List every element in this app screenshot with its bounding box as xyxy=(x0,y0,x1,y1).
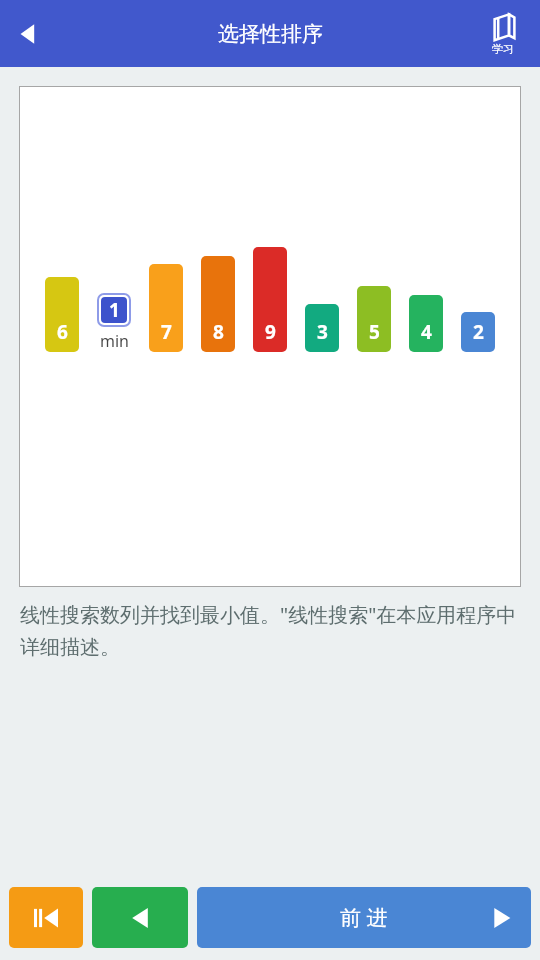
button[interactable]: 前 进 xyxy=(197,887,531,948)
staticText: 1 xyxy=(109,297,120,323)
staticText: 线性搜索数列并找到最小值。"线性搜索"在本应用程序中详细描述。 xyxy=(20,601,520,660)
staticText: 2 xyxy=(473,319,484,345)
staticText: 6 xyxy=(57,319,68,345)
staticText: 3 xyxy=(317,319,328,345)
button[interactable]: Back xyxy=(0,6,56,62)
staticText: 7 xyxy=(161,319,172,345)
staticText: 4 xyxy=(421,319,432,345)
staticText: 9 xyxy=(265,319,276,345)
button[interactable]: Restart xyxy=(9,887,83,948)
staticText: 选择性排序 xyxy=(218,21,323,47)
staticText: 前 进 xyxy=(340,903,388,932)
button[interactable]: 学习 xyxy=(474,5,532,63)
staticText: 8 xyxy=(213,319,224,345)
button[interactable]: Previous xyxy=(92,887,188,948)
staticText: min xyxy=(100,330,129,352)
staticText: 5 xyxy=(369,319,380,345)
staticText: 学习 xyxy=(492,42,514,56)
